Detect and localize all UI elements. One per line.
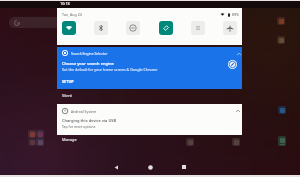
button[interactable]: Wi-Fi <box>62 21 76 35</box>
staticText: Charging this device via USB <box>62 118 117 123</box>
staticText: 89% <box>232 12 240 17</box>
staticText: Tap for more options <box>62 124 96 129</box>
button[interactable]: Home <box>133 157 167 177</box>
staticText: Tue, Aug 24 <box>62 12 82 17</box>
button[interactable]: Manage <box>60 136 79 143</box>
staticText: Android System <box>71 109 97 114</box>
button[interactable]: Android System <box>57 104 242 135</box>
staticText: Silent <box>62 93 72 98</box>
staticText: SETUP <box>62 79 74 84</box>
button[interactable]: Collapse <box>236 51 242 57</box>
button[interactable]: Bluetooth <box>94 21 108 35</box>
button[interactable]: Airplane mode <box>223 21 237 35</box>
button[interactable]: Search engine <box>228 60 237 69</box>
button[interactable]: Back <box>99 157 133 177</box>
button[interactable]: Search <box>9 17 61 28</box>
button[interactable]: Recent apps <box>167 157 201 177</box>
staticText: Choose your search engine <box>62 61 114 66</box>
staticText: Manage <box>62 137 77 142</box>
staticText: 10:18 <box>60 1 70 6</box>
button[interactable]: SETUP <box>61 78 75 85</box>
button[interactable]: Collapse <box>235 108 241 114</box>
button[interactable]: Search Engine Selector <box>57 47 242 89</box>
button[interactable]: Do not disturb <box>126 21 140 35</box>
button[interactable]: Auto rotate <box>159 21 173 35</box>
staticText: Set the default for your home screen & G… <box>62 67 158 72</box>
staticText: Search Engine Selector <box>71 51 108 56</box>
button[interactable]: Notifications <box>191 21 205 35</box>
